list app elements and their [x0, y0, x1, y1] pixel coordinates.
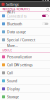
staticText: Special / Connect: [7, 37, 35, 42]
staticText: More...: [7, 44, 18, 48]
button[interactable]: Data usage: [0, 28, 50, 36]
staticText: Sound: [7, 78, 17, 83]
staticText: Call DW settings: [7, 62, 33, 67]
button[interactable]: Personalization: [0, 53, 50, 61]
button[interactable]: Bluetooth: [0, 20, 50, 28]
button[interactable]: Call: [0, 69, 50, 77]
staticText: Data usage: [7, 29, 26, 34]
staticText: Settings: [6, 2, 19, 7]
staticText: Bluetooth: [7, 21, 22, 26]
staticText: DEVICE: [2, 48, 11, 52]
button[interactable]: Storage: [0, 93, 50, 100]
staticText: Call: [7, 70, 13, 75]
staticText: Display: [7, 86, 20, 91]
button[interactable]: Search: [46, 7, 50, 11]
staticText: Storage: [7, 94, 19, 99]
button[interactable]: Display: [0, 85, 50, 93]
button[interactable]: Turn off: [42, 14, 48, 17]
staticText: WIRELESS & NETWORKS: [2, 7, 29, 11]
button[interactable]: Turn on: [42, 22, 48, 25]
button[interactable]: Special / Connect: [0, 36, 50, 44]
staticText: Wi-Fi: [7, 10, 15, 14]
button[interactable]: Sound: [0, 77, 50, 85]
button[interactable]: Back: [0, 2, 6, 7]
button[interactable]: More...: [0, 44, 50, 48]
staticText: Connected to Home: [7, 15, 27, 22]
staticText: Personalization: [7, 54, 32, 59]
button[interactable]: Call DW settings: [0, 61, 50, 69]
button[interactable]: Wi-Fi: [0, 12, 50, 20]
